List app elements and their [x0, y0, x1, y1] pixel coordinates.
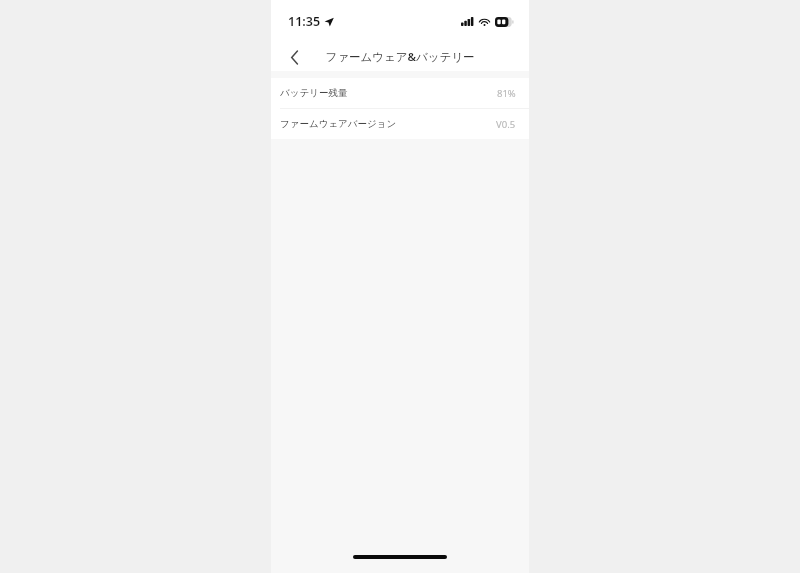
button[interactable]: ファームウェアバージョン — [271, 109, 529, 139]
button[interactable]: Back — [281, 44, 307, 70]
staticText: 81% — [497, 87, 516, 100]
staticText: ファームウェア&バッテリー — [325, 49, 475, 65]
staticText: バッテリー残量 — [280, 87, 348, 99]
staticText: V0.5 — [496, 118, 516, 131]
staticText: ファームウェアバージョン — [280, 118, 397, 130]
staticText: 11:35 — [288, 13, 321, 30]
button[interactable]: バッテリー残量 — [271, 78, 529, 108]
